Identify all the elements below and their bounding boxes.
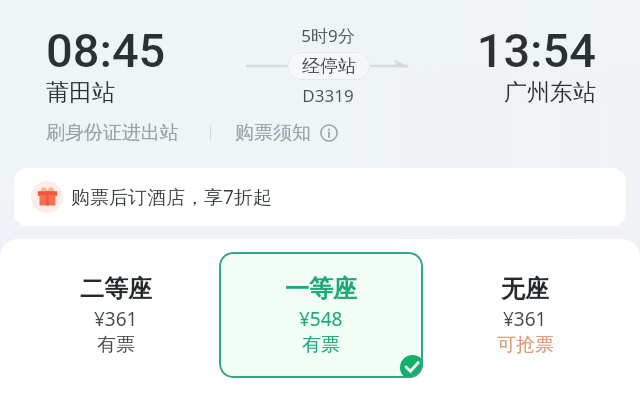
staticText: ¥361 (503, 306, 547, 332)
button[interactable]: 购票后订酒店，享7折起 (14, 168, 626, 226)
button[interactable]: 经停站 (287, 52, 370, 80)
staticText: 刷身份证进出站 (46, 121, 179, 145)
other: Selected (400, 355, 423, 378)
button[interactable]: 一等座 (219, 252, 423, 378)
staticText: 08:45 (46, 23, 166, 78)
button[interactable]: 无座 (435, 274, 615, 357)
staticText: 可抢票 (497, 333, 554, 357)
staticText: 经停站 (302, 55, 356, 78)
staticText: 一等座 (285, 274, 357, 304)
staticText: 13:54 (436, 23, 596, 78)
staticText: 莆田站 (46, 78, 115, 107)
staticText: 购票后订酒店，享7折起 (71, 184, 272, 210)
staticText: 5时9分 (246, 24, 410, 47)
staticText: 二等座 (80, 274, 152, 304)
staticText: 广州东站 (436, 78, 596, 107)
staticText: D3319 (246, 84, 410, 107)
staticText: ¥548 (299, 306, 343, 332)
button[interactable]: 刷身份证进出站 (46, 121, 179, 145)
other: Booking notice info (320, 124, 338, 142)
staticText: 有票 (97, 333, 135, 357)
staticText: ¥361 (94, 306, 138, 332)
staticText: 有票 (302, 333, 340, 357)
button[interactable]: 购票须知 (235, 121, 338, 145)
button[interactable]: 二等座 (26, 274, 206, 357)
staticText: 无座 (501, 274, 549, 304)
staticText: 购票须知 (235, 121, 311, 145)
